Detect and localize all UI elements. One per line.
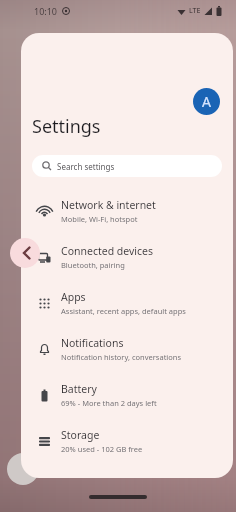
staticText: 69% - More than 2 days left: [61, 398, 157, 408]
staticText: Search settings: [57, 161, 115, 172]
button[interactable]: [10, 238, 40, 268]
staticText: Settings: [32, 114, 101, 139]
button[interactable]: Search settings: [32, 155, 222, 177]
button[interactable]: Connected devices: [21, 234, 233, 280]
staticText: Mobile, Wi-Fi, hotspot: [61, 214, 138, 224]
staticText: Storage: [61, 428, 100, 442]
button[interactable]: [89, 495, 147, 499]
button[interactable]: Notifications: [21, 326, 233, 372]
button[interactable]: A: [193, 88, 220, 115]
staticText: 20% used - 102 GB free: [61, 444, 143, 454]
staticText: LTE: [189, 6, 201, 16]
button[interactable]: Network & internet: [21, 188, 233, 234]
staticText: Network & internet: [61, 198, 156, 212]
button[interactable]: Storage: [21, 418, 233, 464]
staticText: Apps: [61, 290, 86, 304]
staticText: Notifications: [61, 336, 124, 350]
button[interactable]: Apps: [21, 280, 233, 326]
staticText: A: [202, 92, 211, 111]
staticText: Battery: [61, 382, 97, 396]
staticText: 10:10: [34, 5, 58, 17]
button[interactable]: Battery: [21, 372, 233, 418]
staticText: Assistant, recent apps, default apps: [61, 306, 186, 316]
staticText: Bluetooth, pairing: [61, 260, 125, 270]
staticText: Notification history, conversations: [61, 352, 182, 362]
staticText: Connected devices: [61, 244, 154, 258]
